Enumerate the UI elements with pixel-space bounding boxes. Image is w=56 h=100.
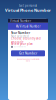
staticText: Select your plan [11,42,33,46]
button[interactable]: Get Number [11,50,45,56]
staticText: My Virtual Number [15,25,40,28]
staticText: Virtual Phone Number [5,7,51,13]
staticText: here [26,60,30,62]
staticText: Already have an account? Sign in [16,58,39,60]
staticText: Get Number [19,52,37,55]
staticText: Virtual Number [10,19,31,23]
staticText: I agree to the terms [14,46,26,48]
staticText: Choose a country and area code [11,37,41,44]
staticText: Not selected [11,35,29,38]
staticText: Get personal [19,4,37,7]
staticText: Your Number [11,31,30,35]
